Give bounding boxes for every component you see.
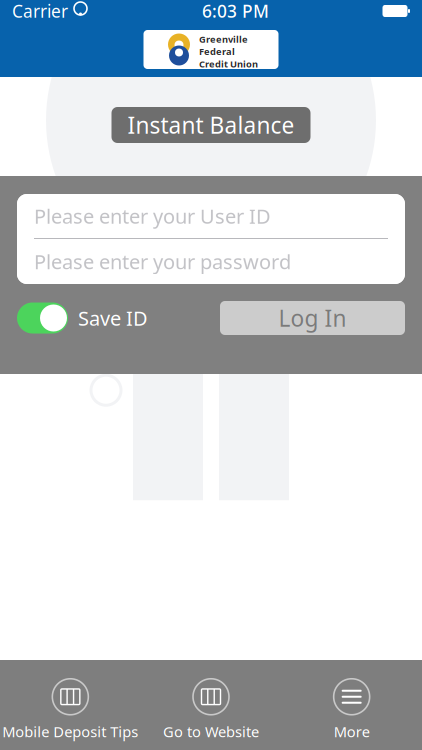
staticText: 6:03 PM <box>202 0 269 22</box>
staticText: Go to Website <box>163 722 259 741</box>
staticText: Please enter your User ID <box>34 203 271 229</box>
staticText: Instant Balance <box>127 110 294 140</box>
staticText: More <box>334 722 370 741</box>
button[interactable]: Go to Website <box>141 673 281 747</box>
staticText: Carrier <box>12 0 68 22</box>
button[interactable]: Please enter your User ID <box>17 194 405 238</box>
button[interactable]: More <box>281 673 422 747</box>
button[interactable]: Save ID <box>17 302 148 333</box>
staticText: Federal <box>199 45 235 58</box>
staticText: Mobile Deposit Tips <box>2 722 138 741</box>
staticText: Please enter your password <box>34 248 291 275</box>
button[interactable]: Please enter your password <box>17 239 405 284</box>
staticText: Credit Union <box>199 58 258 70</box>
staticText: Log In <box>278 303 346 333</box>
button[interactable]: Mobile Deposit Tips <box>0 673 141 747</box>
button[interactable]: Instant Balance <box>111 107 310 143</box>
staticText: Save ID <box>78 305 148 331</box>
button[interactable]: Log In <box>220 301 405 335</box>
staticText: Greenville <box>199 33 248 45</box>
